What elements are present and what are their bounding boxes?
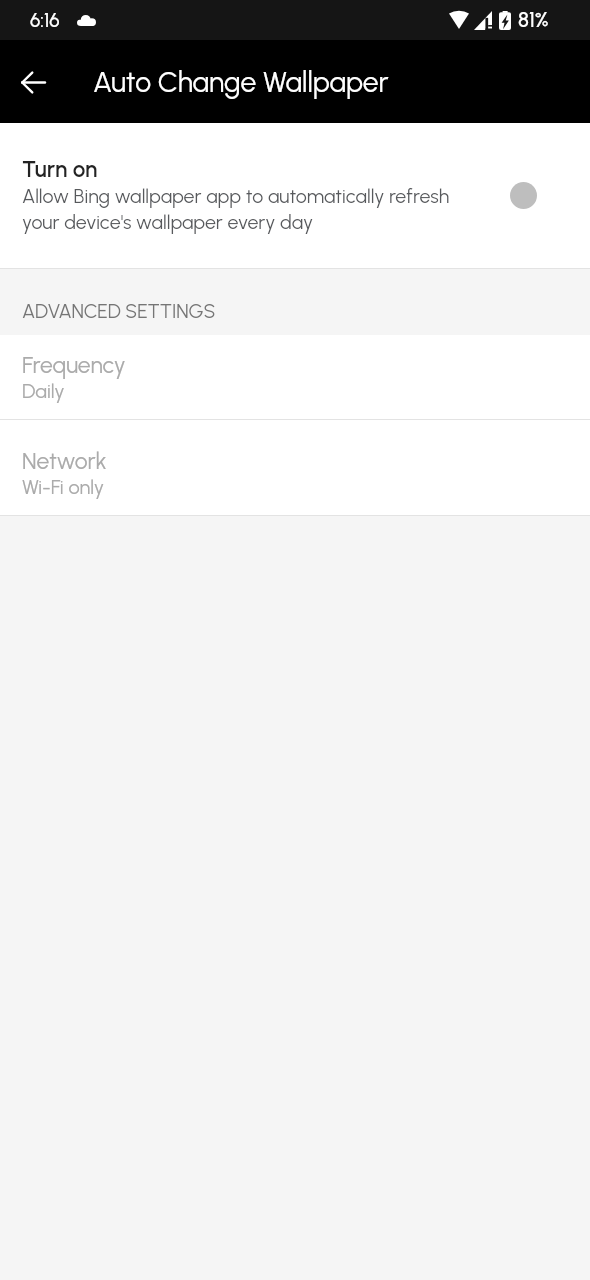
- staticText: Turn on: [22, 156, 98, 183]
- staticText: 6:16: [30, 9, 60, 32]
- staticText: Allow Bing wallpaper app to automaticall…: [22, 184, 450, 234]
- staticText: Auto Change Wallpaper: [93, 65, 389, 99]
- staticText: ADVANCED SETTINGS: [22, 299, 216, 322]
- staticText: Frequency: [22, 351, 126, 378]
- staticText: Network: [22, 447, 107, 474]
- staticText: Daily: [22, 379, 65, 403]
- button[interactable]: Turn on: [0, 123, 590, 268]
- button[interactable]: Back: [8, 57, 58, 107]
- staticText: Wi-Fi only: [22, 475, 105, 499]
- button[interactable]: Network: [0, 420, 590, 515]
- button[interactable]: Turn on: [510, 182, 537, 209]
- staticText: 81%: [518, 8, 549, 33]
- button[interactable]: Frequency: [0, 335, 590, 419]
